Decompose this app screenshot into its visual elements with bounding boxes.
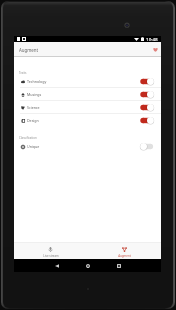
button[interactable]: Technology — [14, 75, 161, 88]
button[interactable]: Unique — [14, 140, 161, 153]
button[interactable]: Home — [82, 260, 93, 271]
staticText: 10:48 — [146, 37, 158, 41]
staticText: Traits — [19, 71, 27, 75]
button[interactable]: Augment — [87, 243, 161, 259]
button[interactable]: Favorites — [150, 44, 161, 55]
staticText: Design — [27, 118, 39, 123]
staticText: Classification — [19, 136, 37, 140]
button[interactable]: Live stream — [14, 243, 87, 259]
button[interactable]: Recent apps — [113, 260, 124, 271]
button[interactable]: Back — [51, 260, 62, 271]
staticText: Live stream — [43, 254, 59, 258]
staticText: Technology — [27, 79, 47, 84]
button[interactable]: Design — [14, 114, 161, 127]
staticText: Unique — [27, 144, 40, 149]
staticText: Augment — [19, 47, 39, 53]
button[interactable]: Science — [14, 101, 161, 114]
staticText: Augment — [118, 254, 131, 258]
staticText: Science — [27, 105, 40, 110]
button[interactable]: Musings — [14, 88, 161, 101]
staticText: Musings — [27, 92, 42, 97]
